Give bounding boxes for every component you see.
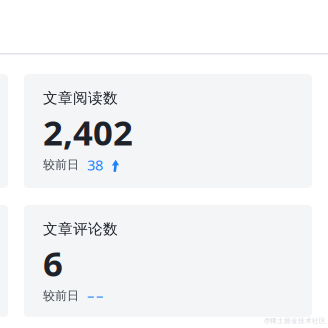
staticText: – – xyxy=(87,286,103,306)
button[interactable]: 文章评论数 xyxy=(24,205,312,317)
staticText: 较前日 xyxy=(43,157,79,172)
staticText: 文章阅读数 xyxy=(43,89,118,107)
staticText: 6 xyxy=(43,240,63,286)
staticText: 2,402 xyxy=(43,109,133,155)
button[interactable]: 文章阅读数 xyxy=(24,74,312,188)
staticText: @稀土掘金技术社区 xyxy=(264,316,326,325)
staticText: 较前日 xyxy=(43,288,79,303)
staticText: 文章评论数 xyxy=(43,220,118,238)
staticText: 38 xyxy=(87,155,103,175)
